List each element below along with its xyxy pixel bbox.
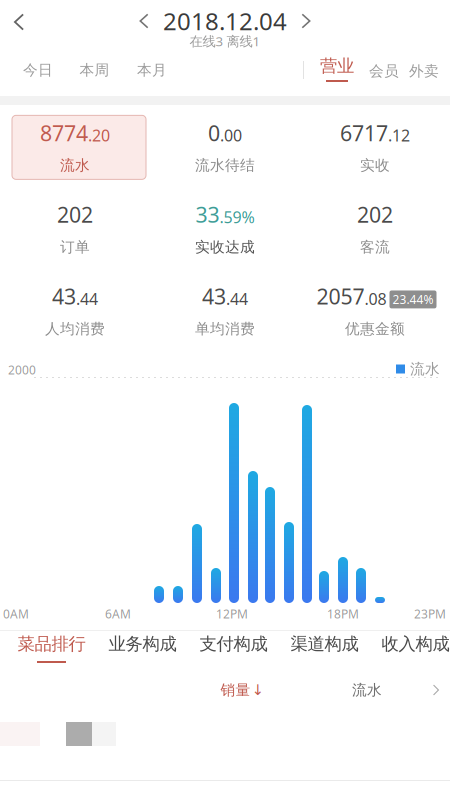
staticText: 客流 [360,238,390,256]
staticText: 2057 [316,282,364,310]
staticText: 收入构成 [381,633,449,655]
button[interactable]: 8774 [0,108,150,190]
staticText: 2000 [8,362,36,378]
staticText: .20 [88,125,110,146]
button[interactable]: 销量 [212,676,272,704]
button[interactable]: 今日 [15,54,61,86]
staticText: 12PM [216,606,248,622]
staticText: 33 [195,200,219,229]
button[interactable]: Previous day [131,7,157,35]
button[interactable]: 支付构成 [188,631,279,675]
button[interactable]: 本周 [71,54,117,86]
button[interactable]: 渠道构成 [279,631,370,675]
staticText: 8774 [40,119,88,147]
staticText: 订单 [60,238,90,256]
staticText: ↓ [251,682,263,698]
button[interactable]: 202 [0,190,150,271]
staticText: 在线3 离线1 [189,32,260,50]
button[interactable]: 202 [300,190,450,271]
staticText: 0 [208,119,220,147]
staticText: 销量 [220,681,250,699]
button[interactable]: 0 [150,108,300,190]
button[interactable]: 6717 [300,108,450,190]
staticText: .00 [220,125,242,146]
staticText: 2018.12.04 [163,5,287,37]
staticText: .44 [226,288,248,309]
button[interactable]: 业务构成 [97,631,188,675]
staticText: 23PM [414,606,446,622]
staticText: 外卖 [409,62,439,80]
staticText: 202 [57,200,93,229]
button[interactable]: 43 [0,271,150,353]
button[interactable]: Back [0,2,38,42]
button[interactable]: More [426,676,446,704]
staticText: 单均消费 [195,320,255,338]
staticText: 今日 [23,61,53,79]
button[interactable]: 33 [150,190,300,271]
button[interactable]: 43 [150,271,300,353]
staticText: 会员 [369,62,399,80]
staticText: 流水 [410,360,440,378]
button[interactable]: 收入构成 [370,631,450,675]
staticText: 实收 [360,156,390,174]
staticText: 0AM [3,606,29,622]
staticText: 本周 [79,61,109,79]
button[interactable]: 本月 [129,54,175,86]
button[interactable]: Next day [293,7,319,35]
staticText: 流水待结 [195,156,255,174]
staticText: .59% [219,206,254,228]
staticText: .44 [76,288,98,309]
staticText: 6AM [105,606,131,622]
staticText: 渠道构成 [290,633,358,655]
staticText: 202 [357,200,393,229]
staticText: 流水 [60,156,90,174]
staticText: 43 [52,282,76,310]
button[interactable]: 流水 [345,676,389,704]
staticText: 18PM [327,606,359,622]
staticText: 人均消费 [45,320,105,338]
staticText: 6717 [340,119,388,147]
staticText: 23.44% [392,291,433,307]
button[interactable]: 外卖 [404,55,444,87]
button[interactable]: 营业 [312,55,362,89]
button[interactable]: 会员 [364,55,404,87]
staticText: 优惠金额 [345,320,405,338]
staticText: 营业 [320,55,354,77]
staticText: 实收达成 [195,238,255,256]
staticText: 业务构成 [108,633,176,655]
staticText: .12 [388,125,410,146]
staticText: .08 [364,288,386,309]
staticText: 支付构成 [199,633,267,655]
staticText: 流水 [352,681,382,699]
staticText: 本月 [137,61,167,79]
button[interactable]: 菜品排行 [6,631,97,675]
staticText: 43 [202,282,226,310]
button[interactable]: 2057 [300,271,450,353]
staticText: 菜品排行 [17,633,85,655]
